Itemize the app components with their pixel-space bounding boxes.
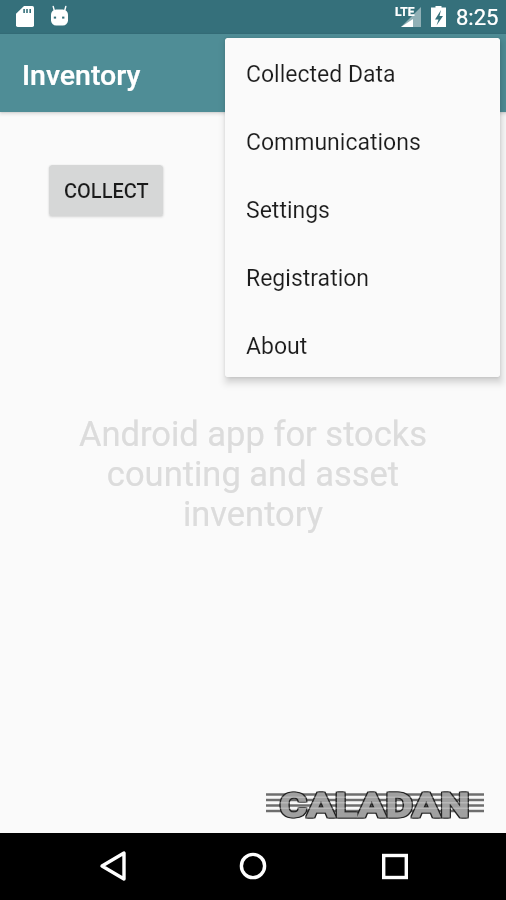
staticText: 8:25 <box>456 5 499 31</box>
staticText: CALADAN <box>281 786 471 820</box>
staticText: About <box>246 333 308 360</box>
button[interactable]: Back <box>88 839 138 889</box>
staticText: CALADAN <box>279 785 469 819</box>
staticText: CALADAN <box>280 786 470 820</box>
staticText: CALADAN <box>279 786 469 820</box>
staticText: Collected Data <box>246 61 396 88</box>
staticText: COLLECT <box>64 179 149 202</box>
staticText: Registration <box>246 265 370 292</box>
staticText: CALADAN <box>279 784 469 818</box>
staticText: CALADAN <box>280 785 470 819</box>
button[interactable]: Collected Data <box>225 38 500 106</box>
staticText: Android app for stocks counting and asse… <box>52 414 454 534</box>
staticText: Inventory <box>22 59 141 92</box>
button[interactable]: About <box>225 310 500 377</box>
staticText: CALADAN <box>281 785 471 819</box>
staticText: Communications <box>246 129 421 156</box>
staticText: CALADAN <box>280 784 470 818</box>
staticText: CALADAN <box>281 784 471 818</box>
button[interactable]: COLLECT <box>49 165 163 216</box>
button[interactable]: Recent apps <box>369 839 419 889</box>
button[interactable]: Home <box>228 839 278 889</box>
staticText: Settings <box>246 197 330 224</box>
button[interactable]: Communications <box>225 106 500 174</box>
button[interactable]: Registration <box>225 242 500 310</box>
staticText: LTE <box>395 5 415 19</box>
button[interactable]: Settings <box>225 174 500 242</box>
